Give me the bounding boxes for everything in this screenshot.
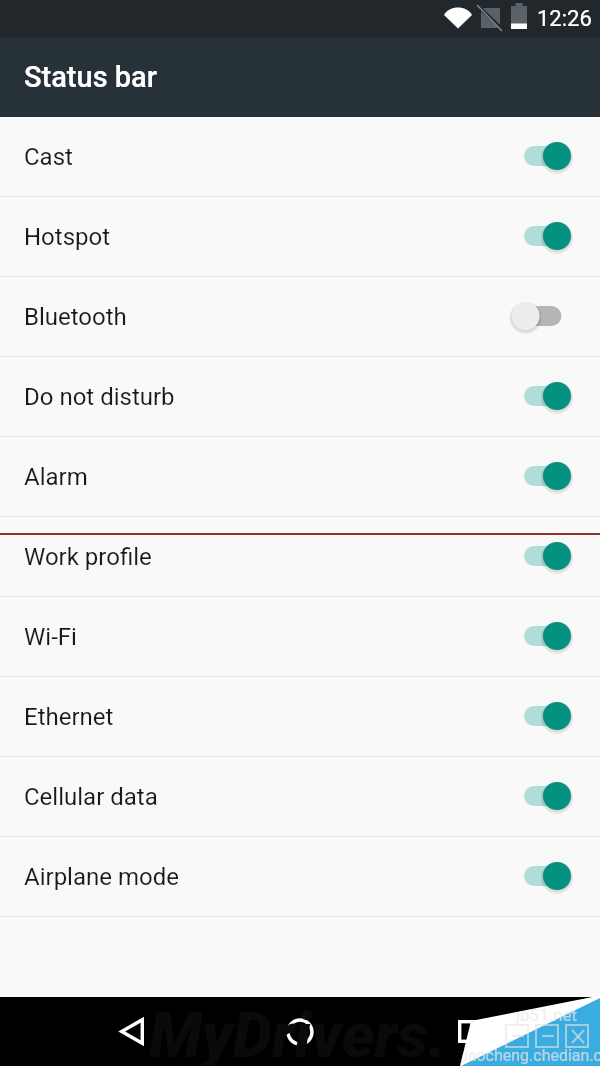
button[interactable]: Alarm [0,437,600,517]
staticText: jiaocheng.chedian.com [460,1046,600,1065]
button[interactable]: Do not disturb [0,357,600,437]
button[interactable]: On [514,215,574,259]
button[interactable]: On [514,615,574,659]
button[interactable]: On [514,775,574,819]
staticText: Work profile [24,543,152,571]
button[interactable]: Back [98,997,166,1066]
button[interactable]: Work profile [0,517,600,597]
button[interactable]: Hotspot [0,197,600,277]
button[interactable]: Recents [435,997,503,1066]
staticText: Hotspot [24,223,111,251]
button[interactable]: On [514,855,574,899]
staticText: Cast [24,143,73,171]
button[interactable]: Cellular data [0,757,600,837]
button[interactable]: On [514,535,574,579]
button[interactable]: On [514,455,574,499]
staticText: Wi-Fi [24,623,77,651]
button[interactable]: On [514,375,574,419]
staticText: jb51.net [516,1005,578,1025]
button[interactable]: Airplane mode [0,837,600,917]
button[interactable]: Wi-Fi [0,597,600,677]
staticText: 12:26 [537,6,592,32]
button[interactable]: Off [514,295,574,339]
staticText: Ethernet [24,703,114,731]
button[interactable]: On [514,135,574,179]
button[interactable]: Home [266,997,334,1066]
button[interactable]: Cast [0,117,600,197]
button[interactable]: Ethernet [0,677,600,757]
button[interactable]: Status bar [0,37,600,117]
button[interactable]: On [514,695,574,739]
button[interactable]: Bluetooth [0,277,600,357]
staticText: MyDrivers. [149,999,447,1066]
staticText: Status bar [24,60,157,94]
staticText: Alarm [24,463,88,491]
staticText: Cellular data [24,783,158,811]
staticText: Bluetooth [24,303,127,331]
staticText: Airplane mode [24,863,179,891]
staticText: Do not disturb [24,383,175,411]
